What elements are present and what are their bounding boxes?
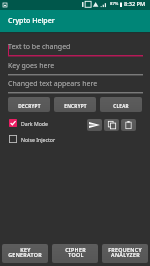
- staticText: FREQUENCY: [108, 246, 142, 253]
- button[interactable]: FREQUENCY: [102, 244, 148, 263]
- staticText: Noise Injector: [21, 136, 56, 143]
- staticText: ANALYZER: [111, 251, 140, 258]
- button[interactable]: KEY: [2, 244, 48, 263]
- staticText: Text to be changed: [8, 42, 71, 52]
- button[interactable]: Paste: [121, 119, 136, 131]
- staticText: DECRYPT: [18, 103, 41, 109]
- button[interactable]: Noise Injector: [9, 135, 56, 143]
- staticText: Crypto Helper: [8, 16, 55, 26]
- staticText: KEY: [20, 246, 31, 253]
- staticText: Dark Mode: [21, 120, 48, 127]
- button[interactable]: CLEAR: [100, 97, 142, 112]
- staticText: ENCRYPT: [64, 103, 87, 109]
- button[interactable]: CIPHER: [52, 244, 98, 263]
- button[interactable]: Dark Mode: [9, 119, 48, 127]
- staticText: Changed text appears here: [8, 79, 98, 89]
- staticText: GENERATOR: [8, 251, 42, 258]
- staticText: CLEAR: [113, 103, 129, 109]
- staticText: 87%: [110, 1, 119, 7]
- button[interactable]: Send: [87, 119, 102, 131]
- button[interactable]: ENCRYPT: [54, 97, 96, 112]
- button[interactable]: DECRYPT: [8, 97, 50, 112]
- button[interactable]: Copy: [104, 119, 119, 131]
- staticText: Key goes here: [8, 61, 55, 71]
- staticText: 8:32 PM: [124, 0, 146, 8]
- staticText: TOOL: [68, 251, 84, 258]
- staticText: CIPHER: [65, 246, 86, 253]
